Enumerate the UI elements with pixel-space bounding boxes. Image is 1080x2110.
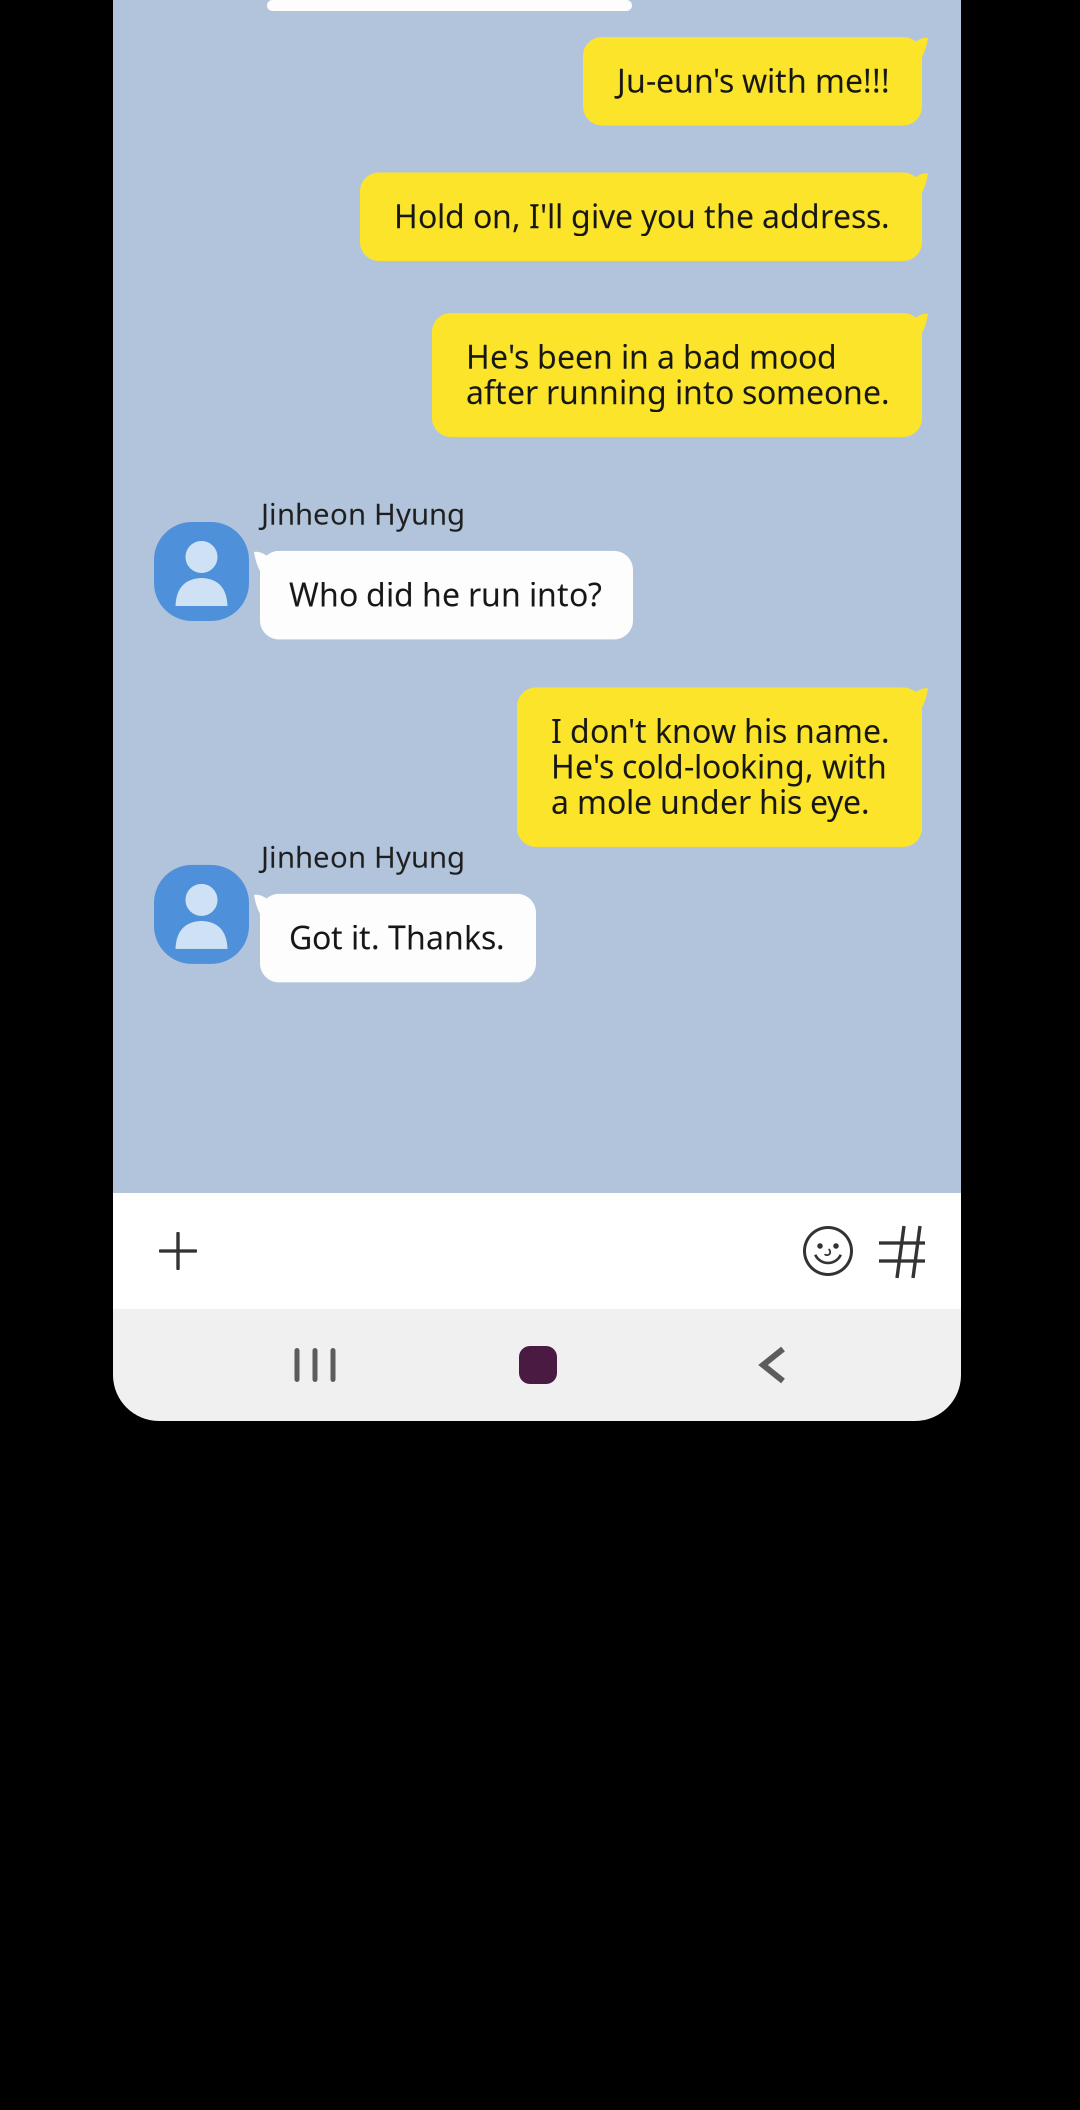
button[interactable]: Hold on, I'll give you the address. [360, 172, 922, 261]
button[interactable]: Who did he run into? [260, 551, 633, 639]
button[interactable]: Back [733, 1335, 813, 1395]
button[interactable]: Recents [275, 1335, 355, 1395]
staticText: Jinheon Hyung [261, 494, 465, 533]
button[interactable]: Emoticons [800, 1223, 856, 1279]
button[interactable]: Shortcuts [873, 1223, 929, 1279]
staticText: He's been in a bad mood after running in… [466, 335, 890, 413]
staticText: Who did he run into? [289, 573, 602, 615]
staticText: Ju-eun's with me!!! [617, 59, 890, 101]
staticText: Hold on, I'll give you the address. [394, 194, 890, 237]
staticText: I don't know his name. He's cold-looking… [551, 709, 890, 823]
button[interactable]: He's been in a bad mood after running in… [432, 313, 922, 437]
staticText: Jinheon Hyung [261, 837, 465, 876]
button[interactable]: Got it. Thanks. [260, 894, 536, 982]
button[interactable]: Ju-eun's with me!!! [583, 37, 922, 125]
button[interactable]: Home [498, 1335, 578, 1395]
button[interactable]: Attach [150, 1223, 206, 1279]
button[interactable]: I don't know his name. He's cold-looking… [517, 687, 922, 847]
staticText: Got it. Thanks. [289, 916, 505, 958]
